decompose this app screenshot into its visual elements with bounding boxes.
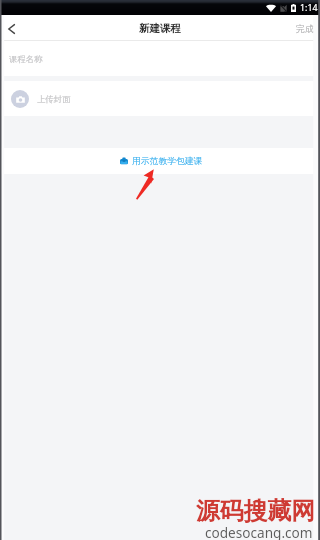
staticText: 用示范教学包建课 bbox=[132, 156, 203, 167]
staticText: 上传封面 bbox=[37, 94, 71, 104]
button[interactable]: 用示范教学包建课 bbox=[0, 148, 320, 174]
button[interactable]: 上传封面 bbox=[0, 81, 320, 116]
staticText: codesocang.com bbox=[205, 523, 313, 540]
button[interactable]: Back bbox=[0, 15, 24, 41]
staticText: 新建课程 bbox=[139, 22, 181, 35]
button[interactable]: 完成 bbox=[296, 15, 314, 41]
staticText: 课程名称 bbox=[9, 54, 43, 64]
button[interactable]: 课程名称 bbox=[0, 41, 320, 76]
staticText: 1:14 bbox=[300, 2, 318, 14]
staticText: 源码搜藏网 bbox=[196, 496, 315, 526]
staticText: 完成 bbox=[296, 23, 314, 34]
